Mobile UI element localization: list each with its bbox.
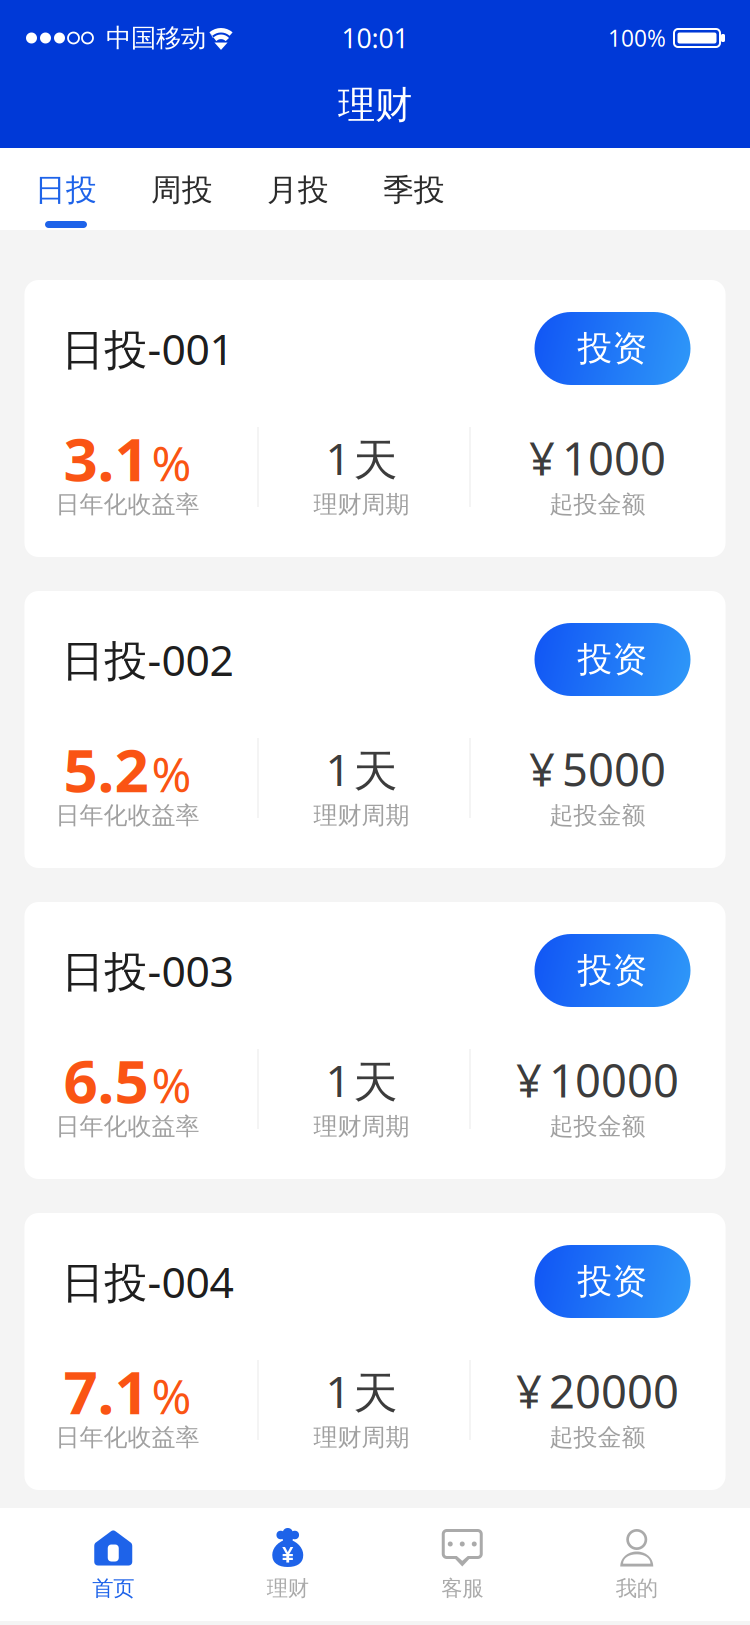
staticText: 理财	[338, 82, 412, 128]
staticText: 起投金额	[549, 1423, 645, 1452]
staticText: 日年化收益率	[55, 1112, 199, 1141]
staticText: ¥	[529, 739, 555, 799]
staticText: ¥	[516, 1050, 542, 1110]
staticText: ¥	[516, 1361, 542, 1421]
button[interactable]: 日投	[8, 148, 124, 230]
staticText: 我的	[616, 1575, 658, 1602]
button[interactable]: 我的	[549, 1529, 724, 1599]
staticText: 日投	[35, 171, 97, 209]
staticText: 日年化收益率	[55, 490, 199, 519]
button[interactable]: 投资	[534, 1245, 690, 1318]
button[interactable]: 周投	[124, 148, 240, 230]
staticText: %	[151, 1053, 191, 1116]
button[interactable]: 季投	[356, 148, 472, 230]
staticText: 天	[353, 1366, 397, 1420]
staticText: 5.2	[63, 729, 148, 809]
staticText: 理财	[267, 1575, 309, 1602]
staticText: 客服	[441, 1575, 483, 1602]
staticText: 理财周期	[313, 801, 409, 830]
staticText: 1	[325, 1051, 350, 1109]
staticText: 起投金额	[549, 490, 645, 519]
staticText: 季投	[383, 171, 445, 209]
staticText: 日投-003	[61, 942, 233, 999]
button[interactable]: 投资	[534, 312, 690, 385]
staticText: ¥	[529, 428, 555, 488]
staticText: 10000	[549, 1050, 679, 1110]
staticText: 投资	[577, 1260, 647, 1303]
staticText: 1000	[562, 428, 666, 488]
staticText: 月投	[267, 171, 329, 209]
staticText: 首页	[92, 1575, 134, 1602]
staticText: 100%	[608, 23, 666, 53]
staticText: 日年化收益率	[55, 801, 199, 830]
staticText: 20000	[549, 1361, 679, 1421]
button[interactable]: 客服	[375, 1529, 549, 1599]
staticText: 投资	[577, 949, 647, 992]
button[interactable]: 首页	[26, 1529, 200, 1599]
button[interactable]: 月投	[240, 148, 356, 230]
staticText: 理财周期	[313, 1423, 409, 1452]
staticText: 1	[325, 740, 350, 798]
staticText: 周投	[151, 171, 213, 209]
button[interactable]: 理财	[200, 1529, 375, 1599]
staticText: 1	[325, 1362, 350, 1420]
button[interactable]: 投资	[534, 623, 690, 696]
staticText: 天	[353, 433, 397, 487]
staticText: 6.5	[63, 1040, 148, 1120]
staticText: 日投-002	[61, 631, 233, 688]
staticText: 7.1	[63, 1351, 148, 1431]
staticText: 日投-004	[61, 1253, 233, 1310]
staticText: 天	[353, 744, 397, 798]
staticText: 起投金额	[549, 1112, 645, 1141]
staticText: %	[151, 742, 191, 805]
staticText: 5000	[562, 739, 666, 799]
staticText: 天	[353, 1055, 397, 1109]
staticText: 10:01	[341, 20, 408, 56]
staticText: 3.1	[63, 418, 148, 498]
staticText: %	[151, 431, 191, 494]
staticText: 起投金额	[549, 801, 645, 830]
staticText: 日年化收益率	[55, 1423, 199, 1452]
staticText: 投资	[577, 638, 647, 681]
staticText: 日投-001	[61, 320, 233, 377]
button[interactable]: 投资	[534, 934, 690, 1007]
staticText: 理财周期	[313, 490, 409, 519]
staticText: 理财周期	[313, 1112, 409, 1141]
staticText: 投资	[577, 327, 647, 370]
staticText: %	[151, 1364, 191, 1427]
staticText: 1	[325, 429, 350, 487]
staticText: 中国移动	[106, 22, 206, 53]
